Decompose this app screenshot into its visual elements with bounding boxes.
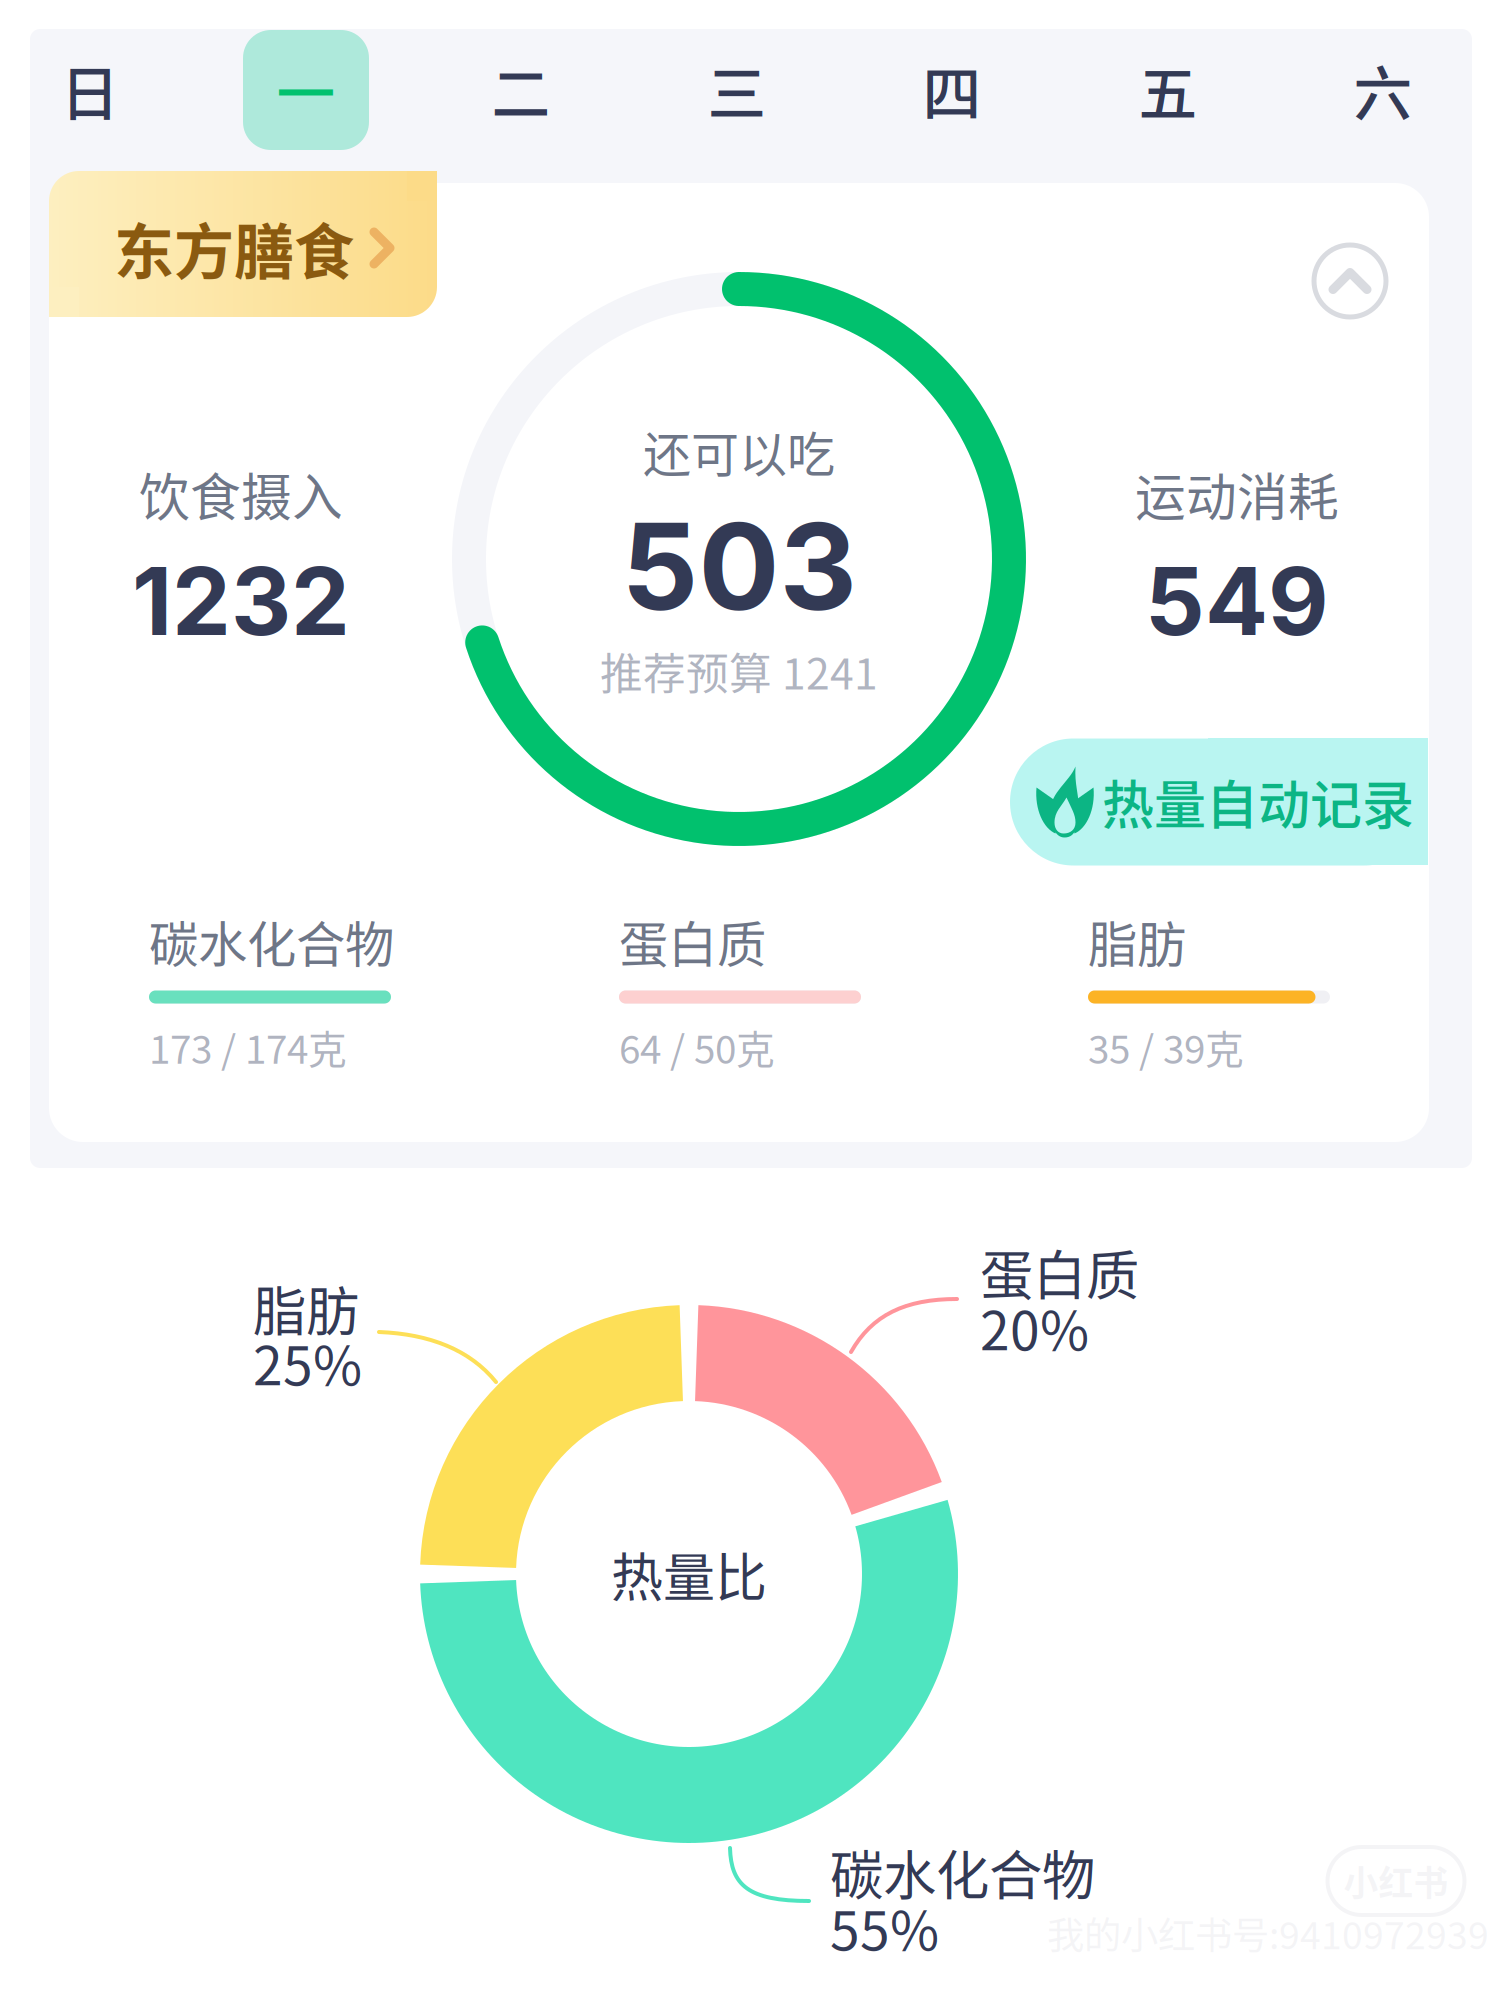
staticText: 脂肪 — [1088, 905, 1186, 977]
staticText: 推荐预算 1241 — [600, 640, 878, 702]
staticText: 三 — [707, 47, 766, 132]
staticText: 东方膳食 — [114, 205, 354, 291]
staticText: 二 — [491, 47, 550, 132]
button[interactable]: Collapse — [1310, 241, 1390, 321]
button[interactable]: 五 — [1088, 30, 1248, 150]
button[interactable]: 脂肪 — [1088, 911, 1388, 1081]
staticText: 六 — [1353, 47, 1412, 132]
staticText: 小红书 — [1343, 1856, 1448, 1906]
button[interactable]: 三 — [657, 30, 817, 150]
staticText: 20% — [980, 1288, 1089, 1366]
button[interactable]: 蛋白质 — [619, 911, 919, 1081]
button[interactable]: 东方膳食 — [49, 171, 437, 317]
staticText: 四 — [922, 47, 981, 132]
staticText: 热量自动记录 — [1102, 764, 1414, 839]
staticText: 碳水化合物 — [830, 1833, 1095, 1911]
staticText: 503 — [621, 493, 856, 639]
staticText: 1232 — [132, 544, 350, 657]
staticText: 热量比 — [611, 1536, 767, 1612]
staticText: 55% — [830, 1888, 939, 1966]
button[interactable]: 六 — [1303, 30, 1463, 150]
button[interactable]: 日 — [10, 30, 170, 150]
staticText: 173 / 174克 — [149, 1019, 347, 1075]
staticText: 我的小红书号:9410972939 — [1047, 1906, 1489, 1960]
button[interactable]: 四 — [872, 30, 1032, 150]
staticText: 还可以吃 — [643, 416, 835, 486]
staticText: 蛋白质 — [619, 905, 766, 977]
staticText: 蛋白质 — [980, 1233, 1139, 1311]
button[interactable]: 一 — [226, 30, 386, 150]
staticText: 一 — [276, 47, 335, 132]
staticText: 25% — [253, 1323, 362, 1401]
staticText: 饮食摄入 — [139, 457, 343, 531]
staticText: 日 — [60, 47, 119, 132]
button[interactable]: 热量自动记录 — [1010, 738, 1428, 865]
button[interactable]: 碳水化合物 — [149, 911, 449, 1081]
button[interactable]: 二 — [441, 30, 601, 150]
staticText: 五 — [1138, 47, 1197, 132]
staticText: 64 / 50克 — [619, 1019, 775, 1075]
staticText: 549 — [1145, 544, 1329, 657]
staticText: 脂肪 — [253, 1269, 359, 1347]
staticText: 运动消耗 — [1135, 457, 1339, 531]
staticText: 35 / 39克 — [1088, 1019, 1244, 1075]
staticText: 碳水化合物 — [149, 905, 394, 977]
